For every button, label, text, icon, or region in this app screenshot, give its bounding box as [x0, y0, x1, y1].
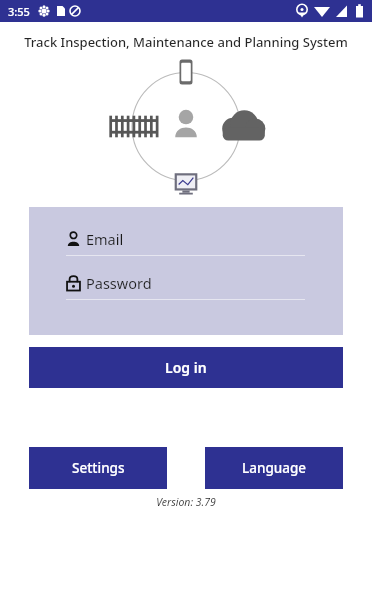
staticText: Version: 3.79: [0, 495, 372, 509]
staticText: Email: [86, 229, 124, 249]
staticText: Password: [86, 273, 152, 293]
staticText: 3:55: [8, 4, 30, 19]
staticText: Settings: [72, 459, 125, 477]
button[interactable]: Log in: [29, 347, 343, 388]
button[interactable]: Settings: [29, 447, 167, 489]
staticText: Language: [242, 459, 307, 477]
staticText: Track Inspection, Maintenance and Planni…: [8, 33, 364, 51]
staticText: Log in: [165, 358, 207, 377]
button[interactable]: Language: [205, 447, 343, 489]
